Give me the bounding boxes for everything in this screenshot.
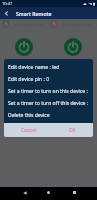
button[interactable]: Turn All Devices on [0,19,48,29]
staticText: Set a timer to turn off this device : [8,100,89,107]
staticText: OK [69,127,76,134]
staticText: Smart Remote [16,10,52,17]
button[interactable]: Set a timer to turn on this device : [4,85,93,97]
staticText: Delete this device [8,112,50,119]
staticText: Edit device pin : 0 [8,76,50,83]
button[interactable]: Recents [68,187,81,200]
staticText: Set a timer to turn on this device : [8,88,88,95]
button[interactable]: Power [15,38,33,56]
staticText: 10:47 [2,1,13,6]
button[interactable]: Delete this device [4,109,93,121]
staticText: Cancel [21,127,37,134]
button[interactable]: Power [64,38,82,56]
button[interactable]: Edit device name : led [4,61,93,73]
button[interactable]: Edit device pin : 0 [4,73,93,85]
button[interactable]: Home [42,187,55,200]
button[interactable]: OK [67,125,78,136]
button[interactable]: Back [0,7,13,19]
button[interactable]: Back [18,187,31,200]
staticText: Edit device name : led [8,64,60,71]
button[interactable]: Turn All Devices off [48,19,97,29]
button[interactable]: Cancel [19,125,39,136]
button[interactable]: Set a timer to turn off this device : [4,97,93,109]
